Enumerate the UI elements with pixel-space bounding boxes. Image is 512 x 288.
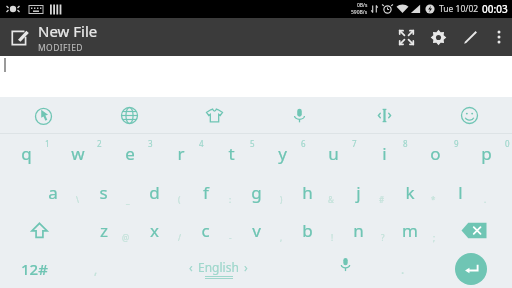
staticText: 1 — [45, 138, 50, 149]
button[interactable]: ‹ — [122, 249, 315, 288]
staticText: › — [244, 259, 248, 275]
staticText: - — [229, 232, 232, 243]
button[interactable]: v — [231, 211, 282, 249]
button[interactable]: Settings — [422, 18, 454, 56]
button[interactable]: s — [78, 173, 129, 211]
button[interactable]: Theme — [172, 97, 257, 133]
button[interactable]: Voice input — [315, 249, 376, 288]
staticText: 3 — [148, 138, 153, 149]
button[interactable]: Emoji — [427, 97, 512, 133]
staticText: y — [278, 142, 287, 165]
button[interactable]: i — [359, 134, 410, 173]
button[interactable]: Enter — [429, 249, 512, 288]
button[interactable]: x — [129, 211, 180, 249]
button[interactable]: Fullscreen — [390, 18, 422, 56]
staticText: k — [405, 181, 415, 204]
button[interactable]: z — [78, 211, 129, 249]
button[interactable]: c — [180, 211, 231, 249]
staticText: New File — [38, 21, 98, 41]
button[interactable]: Voice input — [257, 97, 342, 133]
button[interactable]: Change language — [86, 97, 172, 133]
staticText: & — [328, 194, 334, 205]
staticText: x — [150, 219, 159, 242]
staticText: 7 — [352, 138, 357, 149]
button[interactable]: 12# — [0, 249, 69, 288]
staticText: o — [430, 142, 441, 165]
staticText: ? — [381, 232, 385, 243]
staticText: v — [252, 219, 261, 242]
staticText: d — [149, 181, 160, 204]
staticText: z — [100, 219, 108, 242]
button[interactable]: q — [0, 134, 52, 173]
staticText: g — [251, 181, 262, 204]
button[interactable]: Shift — [0, 211, 78, 249]
button[interactable]: g — [231, 173, 282, 211]
button[interactable]: d — [129, 173, 180, 211]
button[interactable]: w — [52, 134, 104, 173]
button[interactable]: h — [282, 173, 333, 211]
button[interactable]: Cursor control — [342, 97, 427, 133]
staticText: ) — [280, 194, 283, 205]
staticText: MODIFIED — [38, 42, 83, 54]
button[interactable]: p — [461, 134, 512, 173]
staticText: e — [125, 142, 135, 165]
button[interactable]: t — [206, 134, 257, 173]
staticText: English — [198, 259, 239, 275]
staticText: 0B/s — [357, 2, 368, 9]
staticText: . — [484, 194, 487, 205]
button[interactable]: Edit — [454, 18, 486, 56]
button[interactable]: m — [384, 211, 435, 249]
staticText: 4 — [199, 138, 204, 149]
staticText: a — [48, 181, 58, 204]
button[interactable]: f — [180, 173, 231, 211]
button[interactable]: u — [308, 134, 359, 173]
staticText: : — [229, 194, 232, 205]
button[interactable]: a — [27, 173, 78, 211]
staticText: , — [94, 261, 98, 277]
staticText: h — [302, 181, 313, 204]
button[interactable]: Edit file name — [0, 18, 38, 56]
button[interactable]: k — [384, 173, 435, 211]
staticText: \ — [76, 194, 79, 205]
staticText: ; — [433, 232, 436, 243]
staticText: j — [356, 181, 361, 204]
staticText: p — [481, 142, 492, 165]
button[interactable]: n — [333, 211, 384, 249]
button[interactable]: e — [104, 134, 155, 173]
staticText: t — [228, 142, 235, 165]
button[interactable]: More options — [486, 18, 512, 56]
button[interactable]: r — [155, 134, 206, 173]
staticText: ( — [178, 194, 181, 205]
staticText: s — [99, 181, 108, 204]
staticText: 9 — [454, 138, 459, 149]
staticText: w — [71, 142, 85, 165]
staticText: 00:03 — [482, 2, 508, 16]
staticText: q — [21, 142, 32, 165]
staticText: ! — [331, 232, 334, 243]
staticText: u — [328, 142, 339, 165]
staticText: , — [280, 232, 283, 243]
staticText: _ — [126, 194, 130, 205]
button[interactable]: Backspace — [435, 211, 512, 249]
button[interactable]: j — [333, 173, 384, 211]
staticText: 8 — [403, 138, 408, 149]
staticText: 2 — [97, 138, 102, 149]
staticText: ‹ — [189, 259, 193, 275]
staticText: 6 — [301, 138, 306, 149]
staticText: Tue 10/02 — [439, 3, 479, 15]
staticText: 12# — [21, 259, 48, 279]
staticText: c — [201, 219, 210, 242]
button[interactable]: b — [282, 211, 333, 249]
staticText: m — [402, 219, 418, 242]
staticText: / — [178, 232, 181, 243]
button[interactable]: Gesture typing — [0, 97, 86, 133]
staticText: f — [203, 181, 209, 204]
button[interactable]: o — [410, 134, 461, 173]
staticText: 5 — [250, 138, 255, 149]
button[interactable]: l — [435, 173, 486, 211]
button[interactable]: y — [257, 134, 308, 173]
staticText: n — [353, 219, 364, 242]
staticText: # — [379, 194, 385, 205]
